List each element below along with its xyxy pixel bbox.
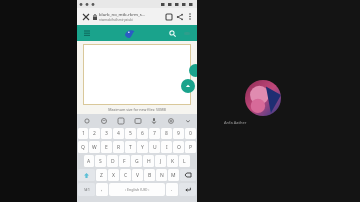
button[interactable]: 3 [101,128,112,139]
staticText: D [111,158,115,165]
button[interactable]: 1 [78,128,88,139]
button[interactable]: 0 [185,128,196,139]
staticText: F [123,158,126,165]
staticText: S [99,158,102,165]
button[interactable]: N [156,169,167,181]
staticText: Anfa Aather [224,120,247,125]
button[interactable]: E [101,141,112,153]
staticText: 2 [93,130,96,137]
button[interactable]: H [143,155,154,167]
button[interactable]: M [168,169,179,181]
button[interactable]: Action [189,64,202,77]
button[interactable]: Voice input [148,115,159,126]
staticText: B [148,172,152,179]
staticText: Z [100,172,103,179]
staticText: I [166,144,168,151]
staticText: N [160,172,164,179]
button[interactable]: Collapse [182,115,193,126]
button[interactable]: Y [137,141,148,153]
button[interactable]: 9 [173,128,184,139]
button[interactable]: X [108,169,119,181]
button[interactable]: Enter [179,183,196,196]
staticText: C [124,172,128,179]
button[interactable]: 7 [149,128,160,139]
button[interactable]: F [119,155,130,167]
button[interactable]: U [149,141,160,153]
staticText: blurb_no_mtb-rkrm_s... [99,12,146,18]
button[interactable]: Z [96,169,107,181]
button[interactable]: V [132,169,143,181]
button[interactable]: blurb_no_mtb-rkrm_s... [99,12,163,22]
staticText: !#1 [84,187,90,192]
button[interactable]: Emoji [98,115,109,126]
button[interactable]: Participant avatar [245,80,281,116]
staticText: Q [81,144,85,151]
button[interactable]: Q [78,141,88,153]
button[interactable]: Close [80,11,91,22]
staticText: K [171,158,175,165]
staticText: A [87,158,91,165]
button[interactable]: R [113,141,124,153]
button[interactable]: Scroll up [181,79,195,93]
button[interactable]: Settings [165,115,176,126]
button[interactable]: Menu [82,28,92,38]
button[interactable]: B [144,169,155,181]
button[interactable]: L [179,155,190,167]
button[interactable]: D [107,155,118,167]
staticText: Maximum size for new files: 50MB [108,107,166,112]
button[interactable]: 5 [125,128,136,139]
staticText: X [112,172,115,179]
staticText: O [177,144,181,151]
button[interactable]: Shift [78,169,95,181]
staticText: . [171,186,173,193]
button[interactable]: Account [182,28,192,38]
button[interactable]: Search [167,28,178,39]
button[interactable]: Symbols [81,115,92,126]
button[interactable]: !#1 [78,183,95,196]
button[interactable]: O [173,141,184,153]
button[interactable]: G [131,155,142,167]
button[interactable]: K [167,155,178,167]
staticText: , [101,186,103,193]
button[interactable]: I [161,141,172,153]
staticText: 3 [105,130,108,137]
staticText: 4 [117,130,120,137]
staticText: J [160,158,162,165]
button[interactable]: More options [185,12,194,21]
button[interactable]: Share [174,11,185,22]
button[interactable]: C [120,169,131,181]
button[interactable]: A [84,155,94,167]
staticText: V [136,172,140,179]
staticText: 0 [189,130,192,137]
button[interactable]: 2 [89,128,100,139]
staticText: U [153,144,157,151]
button[interactable]: S [95,155,106,167]
staticText: 8 [165,130,168,137]
button[interactable]: ‹ English (UK) › [109,183,165,196]
button[interactable]: 4 [113,128,124,139]
staticText: R [117,144,121,151]
button[interactable]: T [125,141,136,153]
button[interactable]: Backspace [180,169,196,181]
button[interactable]: Sticker [115,115,126,126]
button[interactable]: Tabs [163,11,174,22]
staticText: Y [141,144,144,151]
button[interactable]: P [185,141,196,153]
staticText: E [105,144,108,151]
staticText: L [183,158,186,165]
button[interactable]: GIF [132,115,143,126]
staticText: G [135,158,139,165]
button[interactable]: . [166,183,178,196]
button[interactable]: 6 [137,128,148,139]
button[interactable]: , [96,183,108,196]
button[interactable]: W [89,141,100,153]
staticText: 1 [82,130,85,137]
staticText: 9 [177,130,180,137]
staticText: M [171,172,176,179]
staticText: P [189,144,193,151]
staticText: niwmabifsdlsmiryaiubi [99,18,133,22]
button[interactable]: 8 [161,128,172,139]
staticText: W [92,144,97,151]
staticText: 6 [141,130,144,137]
button[interactable]: J [155,155,166,167]
